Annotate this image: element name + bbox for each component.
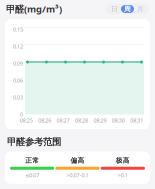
staticText: ≤0.07 [25,172,39,179]
staticText: 0 [20,111,23,118]
staticText: >0.1 [118,172,128,179]
staticText: 08:27 [57,117,70,124]
button[interactable]: 月 [134,5,147,13]
staticText: 甲醛参考范围 [7,136,61,148]
staticText: 月 [137,5,144,13]
staticText: 周 [124,5,131,13]
button[interactable]: 周 [121,5,134,13]
staticText: >0.07-0.1 [66,172,88,179]
staticText: 08:31 [130,117,143,124]
staticText: 0.06 [13,77,23,84]
staticText: 08:28 [75,117,88,124]
staticText: 0.03 [13,94,23,101]
staticText: 极高 [116,156,130,165]
staticText: 08:29 [93,117,106,124]
staticText: 日 [111,5,118,13]
staticText: 08:26 [38,117,51,124]
staticText: 偏高 [70,156,84,165]
button[interactable]: 日 [108,5,121,13]
staticText: 0.12 [13,43,23,50]
staticText: 08:30 [112,117,125,124]
staticText: 甲醛(mg/m³) [6,3,62,15]
staticText: 0.09 [13,60,23,67]
staticText: 0.15 [13,26,23,33]
staticText: 08:25 [20,117,33,124]
staticText: 正常 [25,156,39,165]
